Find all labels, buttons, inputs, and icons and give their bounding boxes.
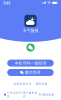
staticText: 9:41: [3, 0, 10, 5]
staticText: 隐私政策: [43, 93, 55, 96]
staticText: 遇到问题: [35, 82, 47, 86]
staticText: 已阅读并同意: [7, 91, 22, 98]
staticText: 天气预报: [22, 28, 38, 33]
button[interactable]: Agree to terms: [4, 94, 6, 96]
staticText: 用户服务协议: [23, 91, 38, 98]
staticText: 本机号码一键登录: [14, 61, 46, 65]
staticText: 其他登录方式: [13, 82, 31, 86]
staticText: 和: [39, 93, 42, 96]
button[interactable]: 微信登录: [7, 69, 54, 76]
button[interactable]: 本机号码一键登录: [7, 60, 54, 67]
staticText: 微信登录: [25, 70, 41, 75]
button[interactable]: 隐私政策: [43, 93, 55, 96]
button[interactable]: 其他登录方式: [13, 82, 31, 86]
button[interactable]: 遇到问题: [35, 82, 47, 86]
button[interactable]: 用户服务协议: [23, 91, 38, 98]
